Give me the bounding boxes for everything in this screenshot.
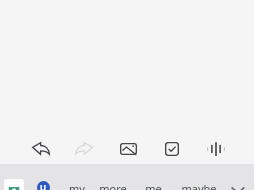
staticText: maybe	[181, 181, 217, 190]
button[interactable]: Expand suggestions	[228, 179, 248, 190]
button[interactable]: my	[55, 175, 99, 190]
button[interactable]: Assistant	[37, 181, 50, 190]
staticText: me	[145, 181, 162, 190]
button[interactable]: Clipboard suggestion	[4, 179, 24, 190]
staticText: more	[99, 181, 127, 190]
button[interactable]: Voice recording	[194, 132, 238, 164]
button[interactable]: maybe	[177, 175, 221, 190]
button[interactable]: Undo	[19, 132, 62, 164]
button[interactable]: me	[131, 175, 175, 190]
button[interactable]: Redo	[62, 132, 106, 164]
staticText: my	[69, 181, 85, 190]
button[interactable]: Checklist	[150, 132, 194, 164]
button[interactable]: more	[91, 175, 135, 190]
button[interactable]: Insert image	[106, 132, 150, 164]
staticText: U	[40, 182, 47, 190]
